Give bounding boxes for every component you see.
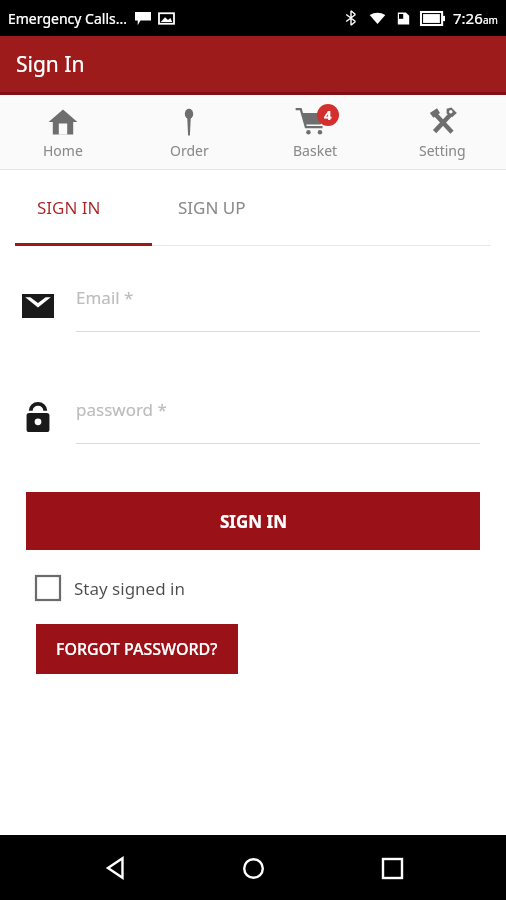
staticText: Home	[43, 141, 83, 160]
staticText: 7:26	[453, 8, 483, 28]
button[interactable]: Home	[0, 95, 126, 169]
button[interactable]: Stay signed in	[36, 576, 185, 600]
button[interactable]: Home	[229, 844, 277, 892]
button[interactable]: 4	[252, 95, 379, 169]
staticText: Emergency Calls...	[8, 9, 127, 28]
staticText: 4	[324, 106, 332, 124]
button[interactable]: Order	[126, 95, 252, 169]
staticText: FORGOT PASSWORD?	[56, 638, 218, 660]
staticText: Basket	[293, 141, 338, 160]
staticText: password *	[76, 398, 167, 421]
button[interactable]: password *	[0, 386, 506, 450]
staticText: Stay signed in	[74, 577, 185, 600]
button[interactable]: Recent apps	[368, 844, 416, 892]
button[interactable]: Email *	[0, 274, 506, 338]
button[interactable]: SIGN IN	[26, 492, 480, 550]
button[interactable]: Setting	[379, 95, 506, 169]
button[interactable]: Back	[91, 844, 139, 892]
staticText: Email *	[76, 286, 134, 309]
staticText: SIGN IN	[37, 196, 101, 219]
staticText: SIGN IN	[220, 510, 287, 533]
staticText: SIGN UP	[178, 196, 246, 219]
staticText: Sign In	[16, 50, 85, 79]
staticText: Order	[170, 141, 209, 160]
staticText: am	[483, 13, 498, 27]
button[interactable]: SIGN UP	[137, 186, 287, 229]
button[interactable]: FORGOT PASSWORD?	[36, 624, 238, 674]
button[interactable]: SIGN IN	[0, 186, 137, 229]
staticText: Setting	[419, 141, 466, 160]
